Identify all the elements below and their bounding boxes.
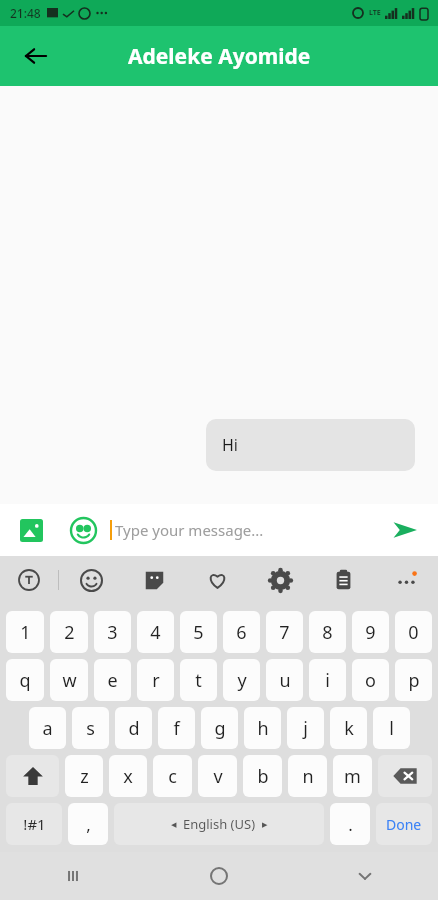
staticText: English (US) xyxy=(183,815,256,833)
button[interactable]: q xyxy=(6,659,44,701)
button[interactable]: t xyxy=(180,659,217,701)
staticText: x xyxy=(123,764,133,789)
staticText: p xyxy=(408,668,420,693)
button[interactable]: Type your message... xyxy=(110,520,386,540)
button[interactable]: !#1 xyxy=(6,803,62,845)
staticText: r xyxy=(152,668,160,693)
staticText: !#1 xyxy=(23,814,46,834)
staticText: m xyxy=(344,764,361,789)
button[interactable]: 6 xyxy=(223,611,260,653)
button[interactable]: 4 xyxy=(137,611,174,653)
staticText: 5 xyxy=(193,620,204,645)
button[interactable]: s xyxy=(72,707,109,749)
staticText: Done xyxy=(386,815,422,834)
staticText: 9 xyxy=(365,620,376,645)
button[interactable]: Attach image xyxy=(14,513,48,547)
button[interactable]: , xyxy=(68,803,108,845)
button[interactable]: v xyxy=(198,755,237,797)
button[interactable]: Translate xyxy=(0,556,58,604)
staticText: i xyxy=(325,668,330,693)
staticText: 6 xyxy=(236,620,247,645)
button[interactable]: i xyxy=(309,659,346,701)
staticText: Hi xyxy=(222,434,238,456)
button[interactable]: Stickers xyxy=(123,556,186,604)
button[interactable]: c xyxy=(153,755,192,797)
staticText: 7 xyxy=(279,620,290,645)
button[interactable]: p xyxy=(395,659,432,701)
staticText: 1 xyxy=(20,620,31,645)
button[interactable]: 0 xyxy=(395,611,432,653)
button[interactable]: w xyxy=(50,659,88,701)
button[interactable]: f xyxy=(158,707,195,749)
button[interactable]: k xyxy=(330,707,367,749)
staticText: ▸ xyxy=(262,818,268,831)
staticText: v xyxy=(213,764,223,789)
staticText: e xyxy=(107,668,118,693)
button[interactable]: n xyxy=(288,755,327,797)
button[interactable]: ◂ xyxy=(114,803,324,845)
button[interactable]: g xyxy=(201,707,238,749)
staticText: Adeleke Ayomide xyxy=(128,42,311,71)
staticText: g xyxy=(214,716,226,741)
button[interactable]: More xyxy=(375,556,438,604)
button[interactable]: m xyxy=(333,755,372,797)
staticText: s xyxy=(86,716,95,741)
button[interactable]: y xyxy=(223,659,260,701)
button[interactable]: 5 xyxy=(180,611,217,653)
staticText: 2 xyxy=(64,620,75,645)
staticText: u xyxy=(279,668,291,693)
button[interactable]: b xyxy=(243,755,282,797)
button[interactable]: 2 xyxy=(50,611,88,653)
staticText: t xyxy=(195,668,202,693)
button[interactable]: Favorites xyxy=(186,556,249,604)
button[interactable]: Send xyxy=(386,511,424,549)
button[interactable]: d xyxy=(115,707,152,749)
staticText: , xyxy=(86,813,91,836)
button[interactable]: Clipboard xyxy=(312,556,375,604)
staticText: c xyxy=(168,764,177,789)
button[interactable]: j xyxy=(287,707,324,749)
button[interactable]: Backspace xyxy=(378,755,432,797)
staticText: a xyxy=(42,716,53,741)
button[interactable]: x xyxy=(109,755,147,797)
staticText: y xyxy=(237,668,247,693)
button[interactable]: Recents xyxy=(0,852,146,900)
staticText: b xyxy=(257,764,269,789)
staticText: n xyxy=(302,764,314,789)
staticText: . xyxy=(348,813,353,836)
button[interactable]: 3 xyxy=(94,611,131,653)
button[interactable]: o xyxy=(352,659,389,701)
staticText: f xyxy=(173,716,180,741)
button[interactable]: Settings xyxy=(249,556,312,604)
button[interactable]: a xyxy=(29,707,66,749)
staticText: Type your message... xyxy=(115,520,264,540)
button[interactable]: Hi xyxy=(206,419,415,471)
staticText: 21:48 xyxy=(10,5,41,21)
button[interactable]: 9 xyxy=(352,611,389,653)
button[interactable]: h xyxy=(244,707,281,749)
button[interactable]: z xyxy=(65,755,103,797)
button[interactable]: Back xyxy=(14,34,58,78)
staticText: ◂ xyxy=(171,818,177,831)
button[interactable]: u xyxy=(266,659,303,701)
staticText: d xyxy=(128,716,140,741)
staticText: w xyxy=(62,668,77,693)
staticText: 0 xyxy=(408,620,419,645)
button[interactable]: e xyxy=(94,659,131,701)
button[interactable]: 7 xyxy=(266,611,303,653)
staticText: j xyxy=(303,716,308,741)
button[interactable]: 1 xyxy=(6,611,44,653)
staticText: LTE xyxy=(369,8,381,18)
button[interactable]: r xyxy=(137,659,174,701)
staticText: 8 xyxy=(322,620,333,645)
button[interactable]: Home xyxy=(146,852,292,900)
button[interactable]: 8 xyxy=(309,611,346,653)
button[interactable]: l xyxy=(373,707,410,749)
button[interactable]: Emoji xyxy=(59,556,123,604)
button[interactable]: Emoji xyxy=(66,513,100,547)
button[interactable]: Done xyxy=(376,803,432,845)
button[interactable]: . xyxy=(330,803,370,845)
button[interactable]: Hide keyboard xyxy=(292,852,438,900)
button[interactable]: Shift xyxy=(6,755,59,797)
staticText: l xyxy=(389,716,394,741)
